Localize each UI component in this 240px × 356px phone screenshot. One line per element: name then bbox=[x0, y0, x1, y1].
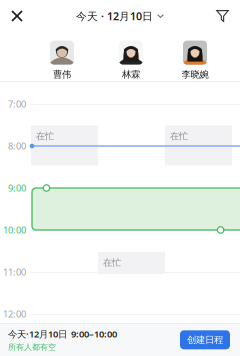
staticText: 林霖 bbox=[122, 69, 140, 80]
staticText: 11:00 bbox=[3, 266, 26, 278]
button[interactable]: 关闭 bbox=[0, 1, 47, 31]
staticText: 9:00 bbox=[8, 182, 26, 194]
staticText: 12:00 bbox=[3, 308, 26, 320]
button[interactable]: 曹伟 bbox=[50, 41, 74, 78]
staticText: 今天·12月10日 9:00–10:00 bbox=[8, 328, 117, 340]
staticText: 在忙 bbox=[170, 130, 188, 142]
button[interactable]: 李晓婉 bbox=[183, 41, 207, 78]
button[interactable]: 筛选 bbox=[193, 1, 240, 31]
staticText: 创建日程 bbox=[187, 334, 223, 346]
button[interactable]: 林霖 bbox=[119, 41, 143, 78]
staticText: 7:00 bbox=[8, 98, 26, 110]
staticText: 曹伟 bbox=[53, 69, 71, 80]
staticText: 今天 · 12月10日 bbox=[76, 9, 153, 23]
button[interactable]: 创建日程 bbox=[180, 330, 230, 349]
staticText: 在忙 bbox=[103, 257, 121, 268]
staticText: 10:00 bbox=[3, 224, 26, 236]
staticText: 李晓婉 bbox=[181, 69, 208, 80]
staticText: 8:00 bbox=[8, 140, 26, 152]
staticText: 在忙 bbox=[36, 130, 54, 142]
staticText: 所有人都有空 bbox=[8, 342, 56, 352]
button[interactable]: 今天 · 12月10日 bbox=[76, 1, 164, 31]
